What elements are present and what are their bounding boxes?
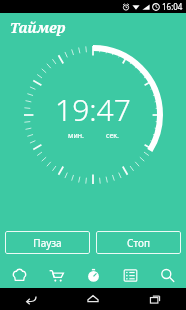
button[interactable]: Home (62, 288, 124, 310)
staticText: мин. (68, 131, 84, 141)
staticText: 19:47 (55, 89, 131, 130)
button[interactable]: Search (149, 262, 186, 288)
staticText: Пауза (33, 236, 62, 250)
button[interactable]: Shopping list (38, 262, 75, 288)
button[interactable]: Menu list (112, 262, 149, 288)
button[interactable]: Пауза (5, 231, 90, 254)
button[interactable]: Timer (75, 262, 112, 288)
button[interactable]: Back (0, 288, 62, 310)
button[interactable]: Стоп (96, 231, 181, 254)
staticText: Стоп (127, 236, 150, 250)
staticText: Таймер (10, 18, 66, 37)
staticText: сек. (106, 131, 119, 141)
button[interactable]: Recents (124, 288, 186, 310)
staticText: 16:04 (162, 1, 183, 12)
button[interactable]: Recipes (0, 262, 38, 288)
